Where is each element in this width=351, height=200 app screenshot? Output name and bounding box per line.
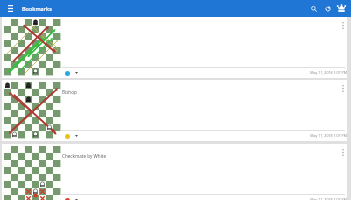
button[interactable]: Bishop (2, 80, 347, 141)
staticText: May 11, 2018 1:07 PM (242, 133, 347, 138)
button[interactable]: More options (2, 17, 347, 78)
button[interactable]: Chess board (334, 1, 349, 16)
staticText: Bishop (62, 89, 77, 95)
staticText: May 11, 2018 1:07 PM (242, 70, 347, 75)
button[interactable]: Refresh (320, 1, 335, 16)
staticText: Checkmate by White (62, 153, 107, 159)
button[interactable]: Checkmate by White (2, 144, 347, 200)
staticText: Bookmarks (22, 5, 52, 12)
button[interactable]: More options (338, 18, 347, 32)
button[interactable]: Navigation menu (3, 1, 18, 16)
button[interactable]: More options (338, 145, 347, 159)
button[interactable]: Search (306, 1, 321, 16)
staticText: May 11, 2018 1:07 PM (242, 197, 347, 200)
button[interactable]: More options (338, 81, 347, 95)
